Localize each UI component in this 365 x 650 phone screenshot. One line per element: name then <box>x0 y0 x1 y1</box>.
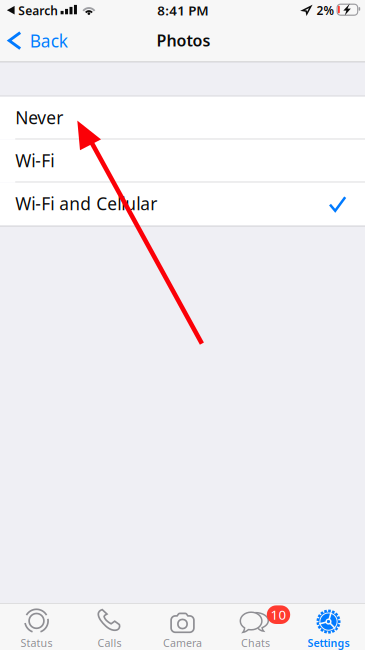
staticText: Photos <box>156 30 210 51</box>
staticText: Wi-Fi and Cellular <box>15 192 157 215</box>
staticText: Camera <box>163 636 202 650</box>
button[interactable]: Back <box>0 22 76 62</box>
staticText: Settings <box>307 636 349 650</box>
button[interactable]: Chats <box>219 604 292 650</box>
staticText: Never <box>15 106 63 129</box>
staticText: Chats <box>241 636 270 650</box>
staticText: Search <box>18 3 58 18</box>
button[interactable]: Settings <box>292 604 365 650</box>
button[interactable]: Camera <box>146 604 219 650</box>
button[interactable]: Wi-Fi <box>0 140 365 183</box>
button[interactable]: Status <box>0 604 73 650</box>
staticText: Wi-Fi <box>15 149 54 172</box>
button[interactable]: Calls <box>73 604 146 650</box>
staticText: 2% <box>316 2 334 18</box>
staticText: 10 <box>270 606 286 623</box>
button[interactable]: Never <box>0 97 365 140</box>
staticText: 8:41 PM <box>157 1 208 19</box>
staticText: Back <box>30 29 68 52</box>
staticText: Calls <box>97 636 121 650</box>
staticText: Status <box>20 636 52 650</box>
button[interactable]: Wi-Fi and Cellular <box>0 183 365 226</box>
